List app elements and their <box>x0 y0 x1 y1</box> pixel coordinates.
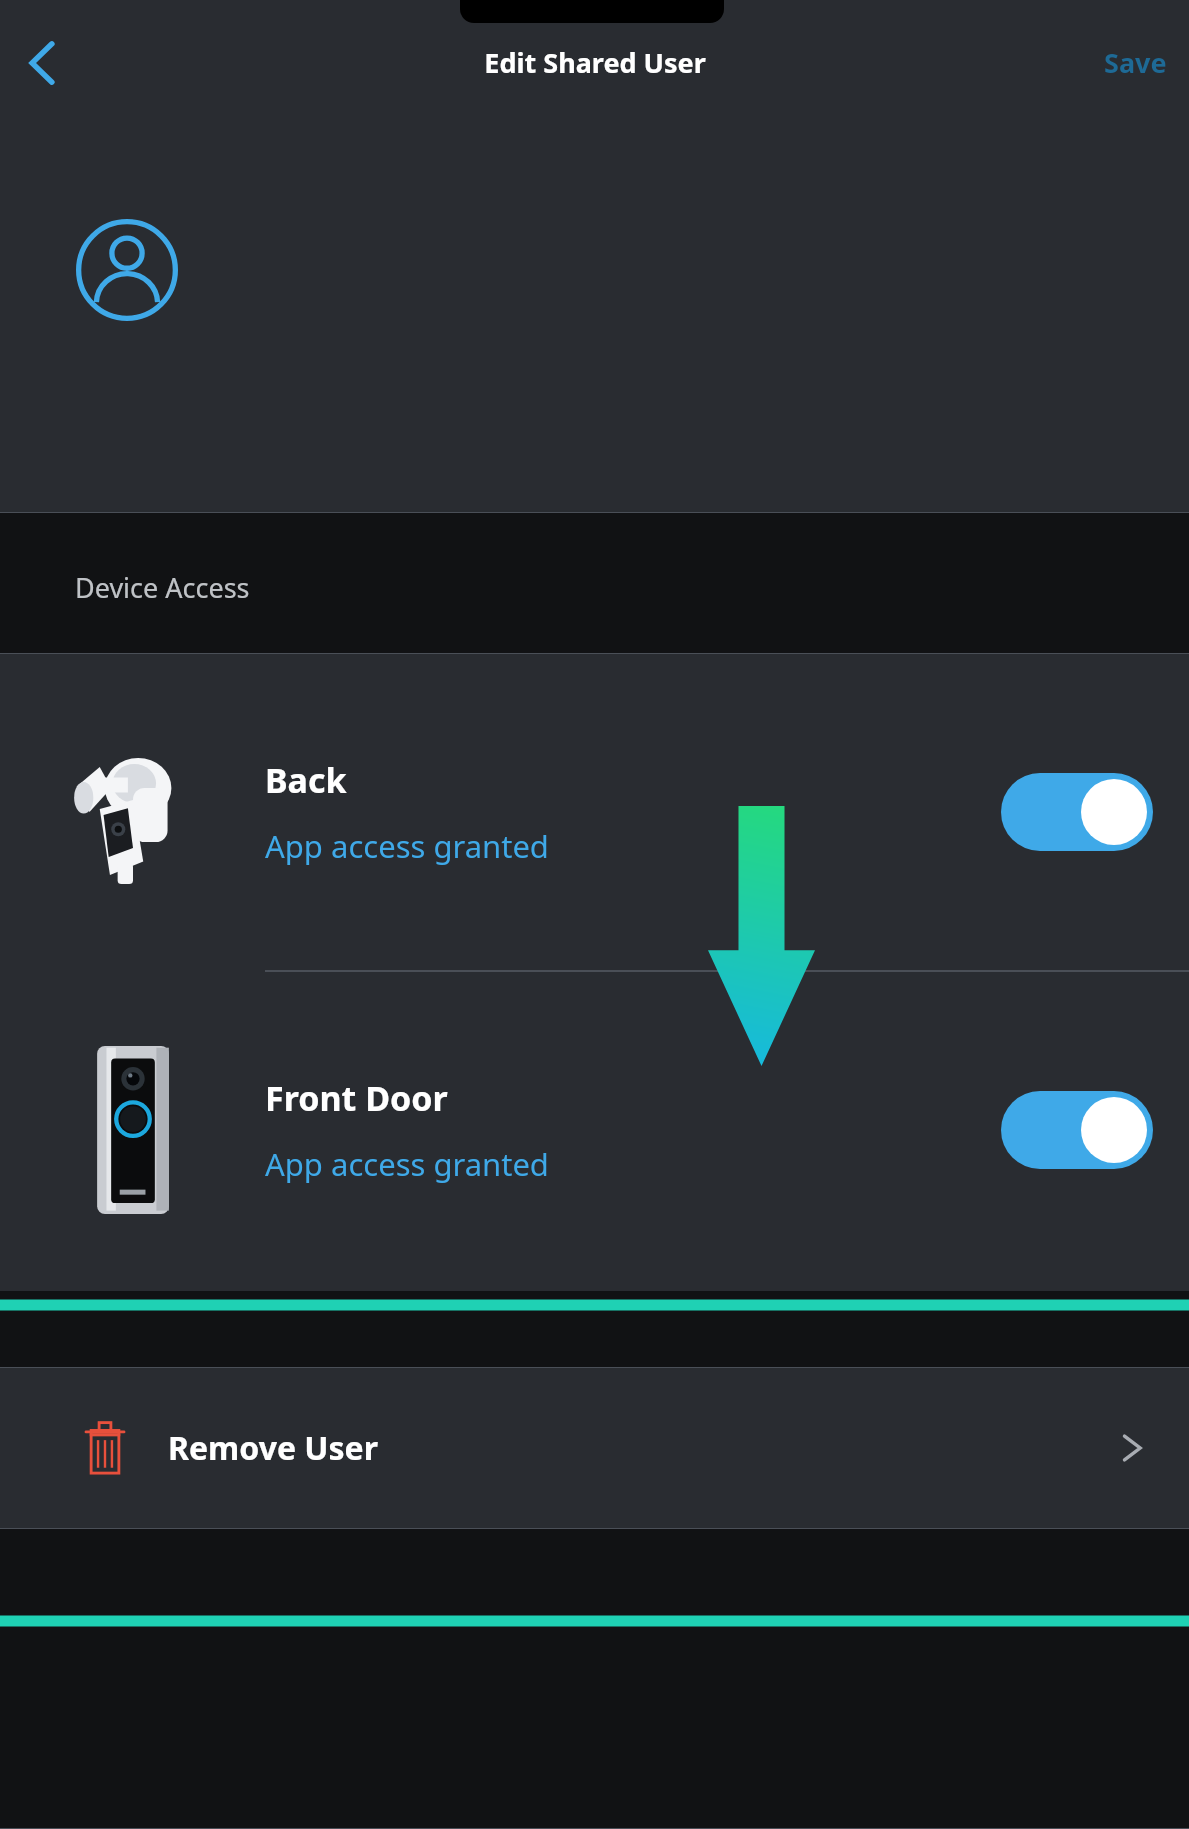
button[interactable]: Toggle Back access <box>1001 773 1153 851</box>
button[interactable]: Front Door <box>0 972 1189 1288</box>
staticText: App access granted <box>265 1143 549 1185</box>
staticText: Device Access <box>75 569 250 606</box>
staticText: Back <box>265 757 347 803</box>
button[interactable]: Remove User <box>0 1368 1189 1528</box>
button[interactable]: Save <box>1082 30 1189 95</box>
staticText: Front Door <box>265 1075 448 1121</box>
staticText: Remove User <box>168 1426 379 1470</box>
button[interactable]: Delete shared user <box>1030 614 1100 684</box>
button[interactable]: Back <box>10 31 74 95</box>
staticText: App access granted <box>265 825 549 867</box>
button[interactable]: Back <box>0 654 1189 970</box>
staticText: Edit Shared User <box>484 44 706 81</box>
button[interactable]: Toggle Front Door access <box>1001 1091 1153 1169</box>
staticText: Save <box>1104 44 1167 81</box>
